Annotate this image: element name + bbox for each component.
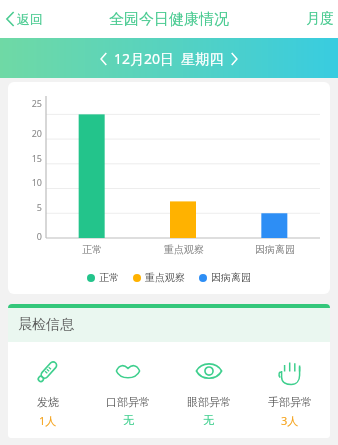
other: Next day bbox=[231, 53, 238, 65]
button[interactable]: 口部异常 bbox=[88, 356, 168, 427]
staticText: 20 bbox=[12, 127, 42, 139]
staticText: 10 bbox=[12, 176, 42, 188]
staticText: 重点观察 bbox=[164, 243, 204, 256]
staticText: 重点观察 bbox=[145, 271, 185, 284]
button[interactable]: 手部异常 bbox=[249, 356, 330, 428]
staticText: 发烧 bbox=[37, 395, 59, 409]
staticText: 1人 bbox=[39, 413, 57, 428]
button[interactable]: 返回 bbox=[0, 5, 51, 33]
staticText: 口部异常 bbox=[106, 395, 150, 409]
staticText: 无 bbox=[203, 413, 214, 427]
button[interactable]: Previous day bbox=[94, 45, 244, 72]
staticText: 正常 bbox=[99, 271, 119, 284]
staticText: 3人 bbox=[281, 413, 299, 428]
staticText: 手部异常 bbox=[268, 395, 312, 409]
staticText: 晨检信息 bbox=[18, 316, 74, 334]
button[interactable]: 眼部异常 bbox=[168, 356, 249, 427]
staticText: 无 bbox=[123, 413, 134, 427]
staticText: 正常 bbox=[82, 243, 102, 256]
staticText: 25 bbox=[12, 97, 42, 109]
staticText: 因病离园 bbox=[255, 243, 295, 256]
staticText: 因病离园 bbox=[211, 271, 251, 284]
button[interactable]: 月度 bbox=[302, 4, 338, 34]
staticText: 12月20日 星期四 bbox=[114, 49, 224, 68]
staticText: 返回 bbox=[17, 11, 43, 27]
staticText: 15 bbox=[12, 152, 42, 164]
other: Previous day bbox=[100, 53, 107, 65]
staticText: 5 bbox=[12, 201, 42, 213]
button[interactable]: 发烧 bbox=[8, 356, 88, 428]
staticText: 全园今日健康情况 bbox=[109, 10, 229, 29]
staticText: 0 bbox=[12, 230, 42, 242]
staticText: 眼部异常 bbox=[187, 395, 231, 409]
